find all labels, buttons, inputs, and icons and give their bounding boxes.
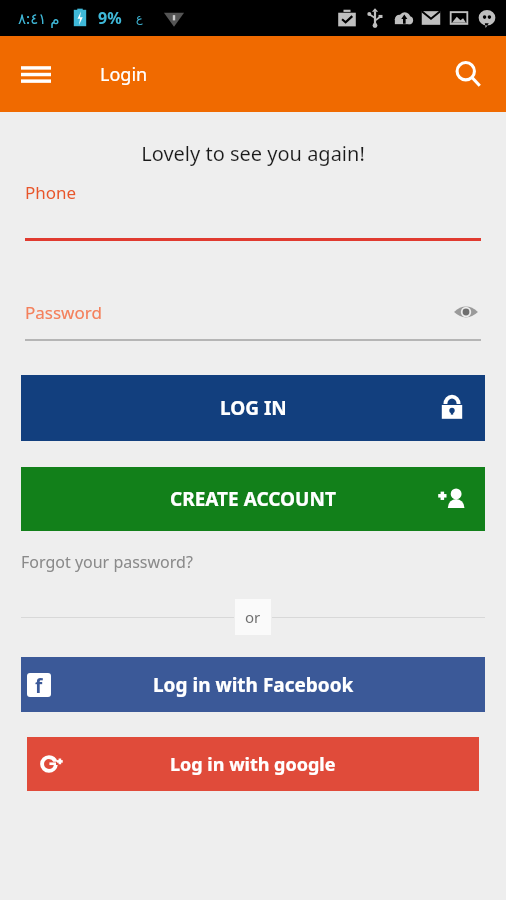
staticText: Password bbox=[25, 301, 451, 324]
staticText: Log in with google bbox=[170, 752, 336, 777]
button[interactable]: Password bbox=[25, 297, 481, 327]
button[interactable]: Phone bbox=[25, 181, 481, 241]
staticText: ع bbox=[136, 12, 143, 25]
staticText: or bbox=[245, 607, 261, 627]
staticText: CREATE ACCOUNT bbox=[170, 486, 336, 512]
staticText: LOG IN bbox=[220, 395, 287, 421]
staticText: Lovely to see you again! bbox=[0, 140, 506, 167]
staticText: Login bbox=[100, 62, 148, 87]
button[interactable]: CREATE ACCOUNT bbox=[21, 467, 485, 531]
staticText: Phone bbox=[25, 181, 77, 204]
button[interactable]: Search bbox=[444, 50, 492, 98]
button[interactable]: Forgot your password? bbox=[21, 551, 193, 573]
button[interactable]: LOG IN bbox=[21, 375, 485, 441]
staticText: Log in with Facebook bbox=[153, 672, 354, 698]
staticText: 9% bbox=[98, 7, 122, 29]
staticText: م ٨:٤١ bbox=[18, 8, 60, 28]
button[interactable]: Show password bbox=[451, 297, 481, 327]
button[interactable]: Open navigation menu bbox=[12, 50, 60, 98]
button[interactable]: Log in with google bbox=[27, 737, 479, 791]
button[interactable]: f bbox=[21, 657, 485, 712]
staticText: f bbox=[35, 673, 43, 697]
